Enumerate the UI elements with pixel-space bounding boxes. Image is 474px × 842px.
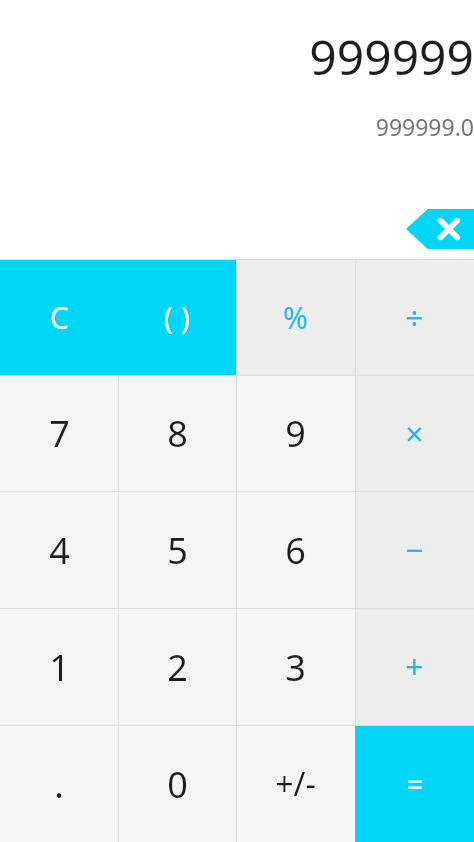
staticText: . — [54, 760, 64, 809]
staticText: 8 — [167, 409, 188, 458]
staticText: 0 — [167, 760, 188, 809]
staticText: ( ) — [164, 297, 190, 338]
button[interactable]: + — [355, 609, 474, 725]
staticText: 2 — [167, 643, 188, 692]
button[interactable]: 7 — [0, 376, 118, 491]
button[interactable]: 0 — [118, 726, 236, 842]
staticText: C — [50, 297, 69, 338]
staticText: × — [405, 412, 424, 456]
staticText: ÷ — [405, 296, 424, 340]
staticText: 1 — [49, 643, 70, 692]
button[interactable]: = — [355, 726, 474, 842]
button[interactable]: 1 — [0, 609, 118, 725]
button[interactable]: +/- — [236, 726, 355, 842]
button[interactable]: 6 — [236, 492, 355, 608]
staticText: 6 — [285, 526, 306, 575]
staticText: + — [405, 645, 424, 689]
button[interactable]: − — [355, 492, 474, 608]
button[interactable]: 9 — [236, 376, 355, 491]
button[interactable]: 8 — [118, 376, 236, 491]
staticText: 4 — [49, 526, 70, 575]
button[interactable]: Backspace — [406, 209, 474, 249]
staticText: 999999 — [309, 24, 474, 89]
button[interactable]: . — [0, 726, 118, 842]
button[interactable]: ÷ — [355, 260, 474, 375]
button[interactable]: % — [236, 260, 355, 375]
button[interactable]: 4 — [0, 492, 118, 608]
staticText: +/- — [275, 762, 316, 806]
staticText: 5 — [167, 526, 188, 575]
button[interactable]: 3 — [236, 609, 355, 725]
button[interactable]: × — [355, 376, 474, 491]
button[interactable]: 5 — [118, 492, 236, 608]
staticText: 3 — [285, 643, 306, 692]
staticText: − — [405, 528, 424, 572]
button[interactable]: ( ) — [118, 260, 236, 375]
button[interactable]: 2 — [118, 609, 236, 725]
staticText: % — [283, 297, 308, 338]
staticText: 9 — [285, 409, 306, 458]
staticText: 999999.0 — [375, 111, 474, 142]
button[interactable]: C — [0, 260, 118, 375]
staticText: = — [406, 764, 424, 805]
staticText: 7 — [49, 409, 70, 458]
